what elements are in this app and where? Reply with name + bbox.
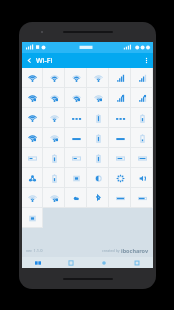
button[interactable]: Icon 6 3: [87, 188, 109, 208]
button[interactable]: Icon 6 5: [131, 188, 153, 208]
button[interactable]: Icon 4 4: [109, 148, 131, 168]
button[interactable]: Icon 5 2: [65, 168, 87, 188]
button[interactable]: Icon 0 4: [109, 68, 131, 88]
button[interactable]: Icon 6 0: [22, 188, 43, 208]
button[interactable]: Icon 2 4: [109, 108, 131, 128]
button[interactable]: Icon 3 2: [65, 128, 87, 148]
button[interactable]: Icon 0 5: [131, 68, 153, 88]
button[interactable]: Icon 2 5: [131, 108, 153, 128]
button[interactable]: Icon 5 1: [43, 168, 65, 188]
button[interactable]: Icon 3 5: [131, 128, 153, 148]
button[interactable]: Icon 5 3: [87, 168, 109, 188]
button[interactable]: Icon 0 1: [43, 68, 65, 88]
staticText: Wi-Fi: [36, 56, 53, 66]
button[interactable]: Icon 1 2: [65, 88, 87, 108]
button[interactable]: Icon 5 5: [131, 168, 153, 188]
button[interactable]: Icon 4 3: [87, 148, 109, 168]
button[interactable]: Icon 2 0: [22, 108, 43, 128]
button[interactable]: Icons: [22, 257, 54, 268]
button[interactable]: Icon 2 2: [65, 108, 87, 128]
button[interactable]: Icon 6 2: [65, 188, 87, 208]
button[interactable]: Settings: [87, 257, 120, 268]
button[interactable]: Icon 4 2: [65, 148, 87, 168]
button[interactable]: Icon 4 0: [22, 148, 43, 168]
button[interactable]: Icon 6 4: [109, 188, 131, 208]
button[interactable]: Icon 5 4: [109, 168, 131, 188]
button[interactable]: Icon 0 2: [65, 68, 87, 88]
staticText: ver. 1.1.0: [26, 248, 43, 253]
button[interactable]: Icon 1 0: [22, 88, 43, 108]
button[interactable]: More options: [139, 53, 153, 68]
button[interactable]: Icon 2 3: [87, 108, 109, 128]
button[interactable]: Icon 3 0: [22, 128, 43, 148]
button[interactable]: Icon 1 5: [131, 88, 153, 108]
button[interactable]: Icon 1 1: [43, 88, 65, 108]
button[interactable]: Icon 2 1: [43, 108, 65, 128]
button[interactable]: Icon 7 0: [22, 208, 43, 228]
button[interactable]: Icon 3 4: [109, 128, 131, 148]
button[interactable]: Icon 3 1: [43, 128, 65, 148]
button[interactable]: Icon 1 4: [109, 88, 131, 108]
button[interactable]: Icon 4 1: [43, 148, 65, 168]
staticText: ibocharov: [121, 247, 149, 254]
button[interactable]: Files: [54, 257, 87, 268]
button[interactable]: Icon 1 3: [87, 88, 109, 108]
staticText: created by: [102, 248, 121, 253]
button[interactable]: Icon 0 3: [87, 68, 109, 88]
button[interactable]: Icon 5 0: [22, 168, 43, 188]
button[interactable]: Icon 6 1: [43, 188, 65, 208]
button[interactable]: Icon 0 0: [22, 68, 43, 88]
button[interactable]: Back: [22, 53, 36, 68]
button[interactable]: Apps: [120, 257, 153, 268]
button[interactable]: Icon 4 5: [131, 148, 153, 168]
button[interactable]: Icon 3 3: [87, 128, 109, 148]
